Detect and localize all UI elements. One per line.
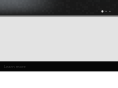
button[interactable]: Featured photo (0, 0, 118, 15)
button[interactable]: Learn more (0, 62, 118, 72)
staticText: Learn more (4, 64, 26, 69)
button[interactable]: Page indicator (100, 8, 113, 15)
